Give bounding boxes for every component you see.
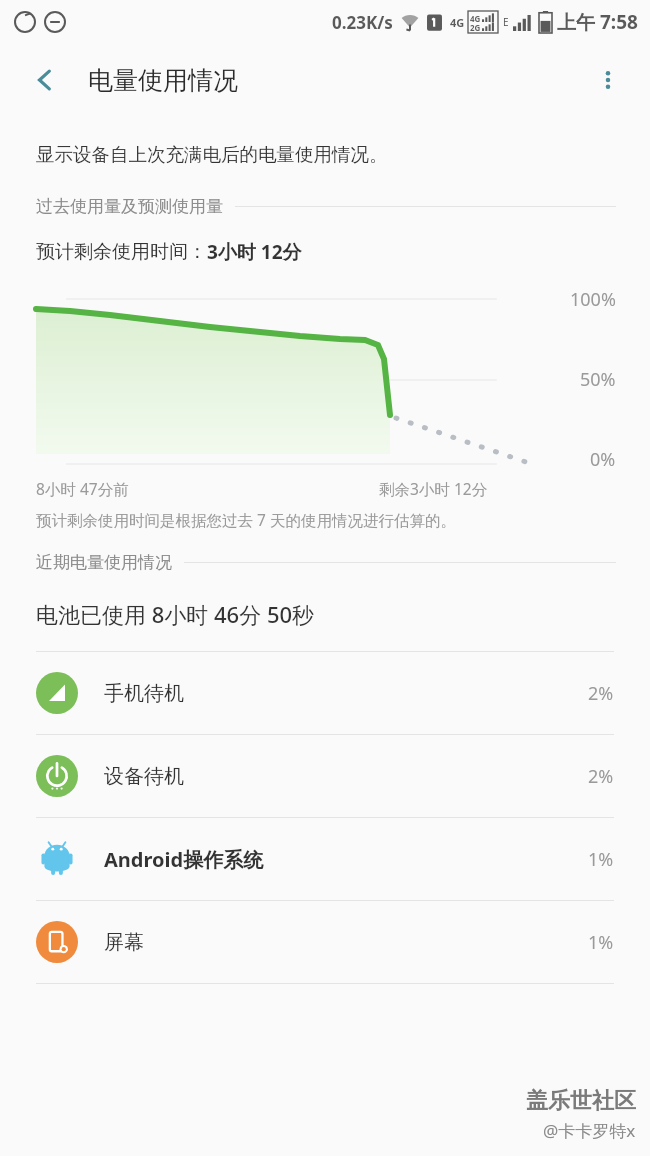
staticText: 手机待机 [104,681,184,706]
staticText: 近期电量使用情况 [36,552,172,573]
staticText: 1% [588,847,614,872]
button[interactable]: 设备待机 [0,735,650,817]
button[interactable]: More options [584,56,632,104]
staticText: 盖乐世社区 [526,1087,636,1115]
staticText: 显示设备自上次充满电后的电量使用情况。 [36,143,388,166]
staticText: 2% [588,681,614,706]
button[interactable]: 屏幕 [0,901,650,983]
staticText: 预计剩余使用时间： [36,240,207,264]
staticText: 过去使用量及预测使用量 [36,196,223,217]
staticText: 2% [588,764,614,789]
staticText: 0.23K/s [332,11,393,34]
staticText: 0% [590,447,616,472]
staticText: 设备待机 [104,764,184,789]
staticText: 1% [588,930,614,955]
staticText: E [503,15,509,29]
staticText: 电池已使用 8小时 46分 50秒 [36,599,315,629]
button[interactable]: Android操作系统 [0,818,650,900]
staticText: 100% [570,287,616,312]
staticText: 50% [580,367,616,392]
staticText: Android操作系统 [104,846,264,873]
staticText: 预计剩余使用时间是根据您过去 7 天的使用情况进行估算的。 [36,509,456,530]
staticText: 上午 7:58 [557,9,638,35]
button[interactable]: 手机待机 [0,652,650,734]
button[interactable]: Back [22,57,68,103]
staticText: 屏幕 [104,930,144,955]
staticText: 4G [450,15,465,30]
staticText: @卡卡罗特x [543,1119,636,1142]
staticText: 剩余3小时 12分 [379,478,488,499]
staticText: 4G [470,13,481,22]
staticText: 3小时 12分 [207,239,302,265]
staticText: 8小时 47分前 [36,478,129,499]
staticText: 电量使用情况 [88,65,238,96]
staticText: 2G [470,22,481,31]
